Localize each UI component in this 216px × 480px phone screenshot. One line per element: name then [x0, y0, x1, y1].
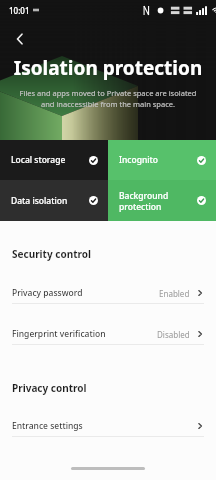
staticText: Isolation protection — [0, 55, 216, 81]
staticText: Local storage — [11, 154, 89, 166]
button[interactable]: Data isolation — [0, 180, 108, 221]
staticText: 10:01 — [9, 5, 30, 16]
button[interactable]: Incognito — [108, 140, 216, 180]
staticText: Incognito — [119, 154, 197, 166]
staticText: Entrance settings — [12, 420, 196, 432]
staticText: Data isolation — [11, 195, 89, 207]
button[interactable]: Background protection — [108, 180, 216, 221]
button[interactable]: Back — [6, 25, 34, 53]
staticText: Security control — [12, 247, 91, 261]
staticText: Privacy password — [12, 287, 159, 299]
button[interactable]: Fingerprint verification — [0, 324, 216, 344]
staticText: Background protection — [119, 190, 197, 212]
staticText: Enabled — [159, 288, 190, 299]
button[interactable]: Privacy password — [0, 283, 216, 303]
staticText: Privacy control — [12, 381, 87, 395]
button[interactable]: Entrance settings — [0, 416, 216, 436]
staticText: Files and apps moved to Private space ar… — [17, 88, 199, 109]
staticText: Disabled — [157, 329, 190, 340]
staticText: Fingerprint verification — [12, 328, 157, 340]
button[interactable]: Local storage — [0, 140, 108, 180]
